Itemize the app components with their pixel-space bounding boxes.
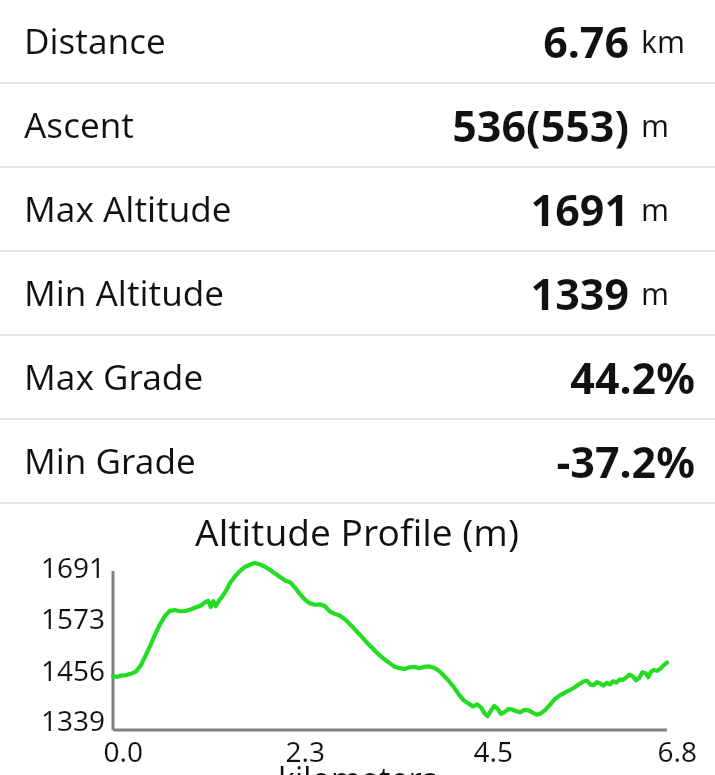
- staticText: Max Altitude: [24, 185, 232, 233]
- staticText: 1691: [232, 180, 629, 239]
- button[interactable]: Min Altitude: [0, 252, 715, 334]
- staticText: kilometers: [0, 757, 715, 775]
- staticText: 0.0: [0, 732, 143, 770]
- staticText: 2.3: [0, 732, 325, 770]
- button[interactable]: Distance: [0, 0, 715, 82]
- button[interactable]: Max Grade: [0, 336, 715, 418]
- staticText: m: [641, 189, 670, 230]
- staticText: Ascent: [24, 101, 134, 149]
- staticText: m: [641, 273, 670, 314]
- button[interactable]: Max Altitude: [0, 168, 715, 250]
- staticText: Min Altitude: [24, 269, 225, 317]
- staticText: 1456: [0, 651, 105, 689]
- staticText: 1573: [0, 599, 105, 637]
- staticText: 44.2%: [204, 348, 695, 407]
- staticText: 4.5: [0, 732, 513, 770]
- button[interactable]: Ascent: [0, 84, 715, 166]
- staticText: m: [641, 105, 670, 146]
- staticText: km: [641, 21, 686, 62]
- staticText: 6.8: [0, 732, 697, 770]
- staticText: Altitude Profile (m): [0, 506, 714, 556]
- staticText: 6.76: [166, 12, 629, 71]
- staticText: Min Grade: [24, 437, 196, 485]
- staticText: -37.2%: [196, 432, 695, 491]
- button[interactable]: Min Grade: [0, 420, 715, 502]
- staticText: 1339: [225, 264, 629, 323]
- staticText: 1339: [0, 701, 105, 739]
- staticText: 536(553): [134, 96, 629, 155]
- staticText: Distance: [24, 17, 166, 65]
- staticText: 1691: [0, 548, 105, 586]
- staticText: Max Grade: [24, 353, 204, 401]
